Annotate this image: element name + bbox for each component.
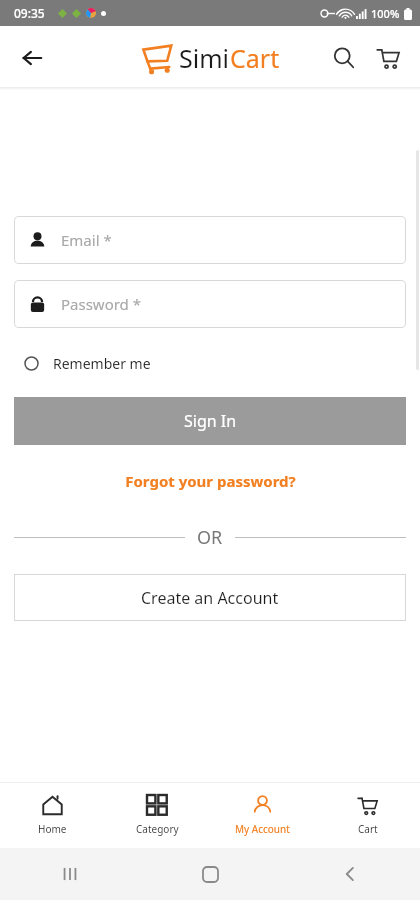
staticText: Password * [61, 294, 142, 314]
staticText: 09:35 [14, 5, 45, 21]
button[interactable]: My Account [210, 783, 315, 848]
staticText: OR [197, 525, 223, 550]
button[interactable]: Back [280, 848, 420, 900]
button[interactable]: Home [0, 783, 105, 848]
staticText: 100% [371, 6, 400, 21]
staticText: My Account [235, 822, 290, 836]
button[interactable]: Email * [14, 216, 406, 264]
button[interactable]: Sign In [14, 397, 406, 445]
staticText: Simi [179, 41, 230, 75]
staticText: Email * [61, 230, 112, 250]
button[interactable]: Forgot your password? [14, 467, 406, 495]
staticText: Cart [358, 822, 378, 836]
staticText: Sign In [184, 410, 237, 432]
button[interactable]: Cart [315, 783, 420, 848]
staticText: Cart [230, 41, 280, 75]
button[interactable]: Remember me [14, 350, 151, 377]
staticText: Remember me [53, 354, 151, 373]
button[interactable]: Search [322, 36, 366, 80]
button[interactable]: Create an Account [14, 574, 406, 621]
staticText: Category [136, 822, 179, 836]
button[interactable]: Recents [0, 848, 140, 900]
button[interactable]: Password * [14, 280, 406, 328]
button[interactable]: Home [140, 848, 280, 900]
staticText: Home [38, 822, 67, 836]
button[interactable]: Category [105, 783, 210, 848]
staticText: Forgot your password? [125, 471, 296, 491]
button[interactable]: Back [8, 34, 56, 82]
button[interactable]: Cart [366, 36, 410, 80]
staticText: Create an Account [141, 587, 279, 609]
